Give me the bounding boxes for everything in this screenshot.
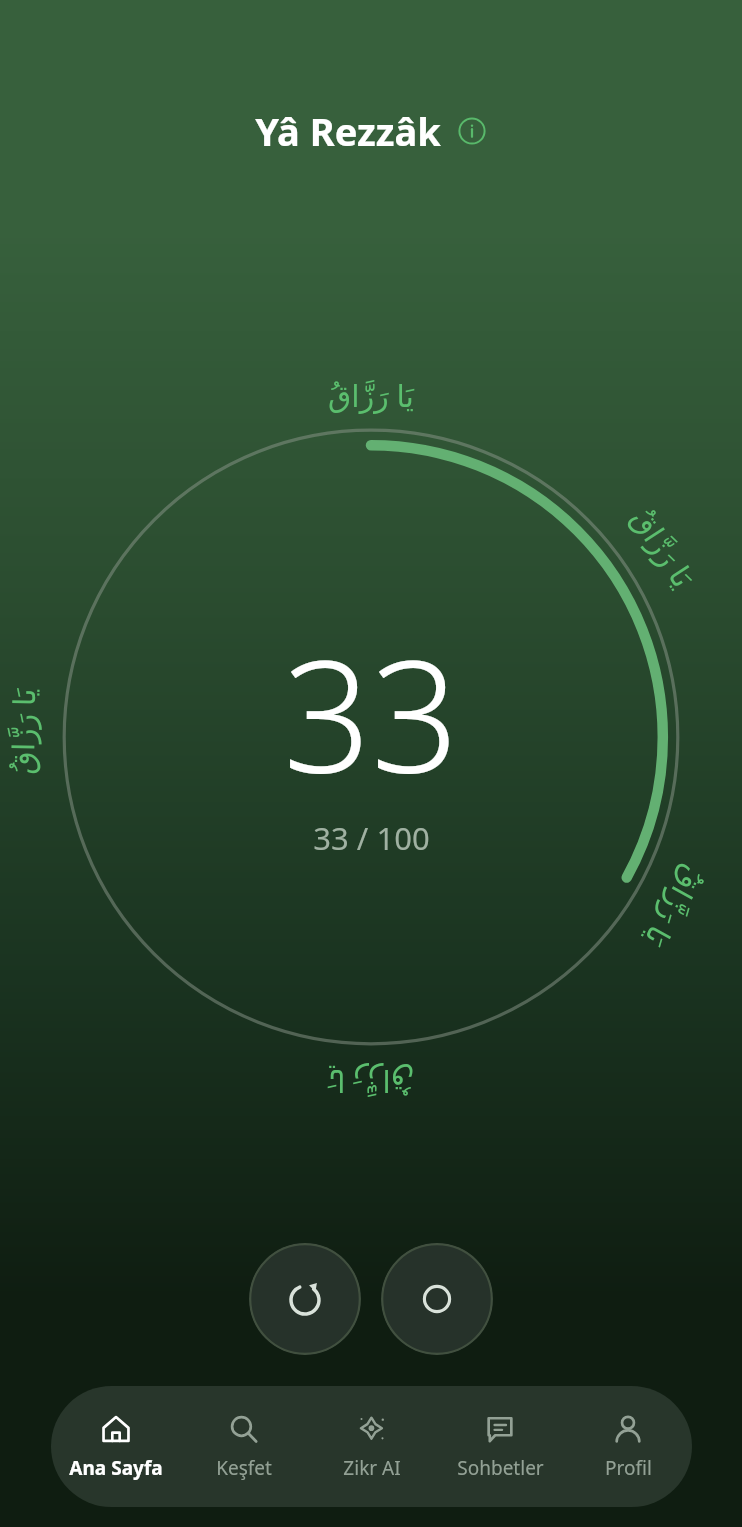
- button[interactable]: Sıfırla: [249, 1243, 361, 1355]
- button[interactable]: Say: [381, 1243, 493, 1355]
- staticText: 33 / 100: [313, 817, 430, 859]
- staticText: يَا رَزَّاقُ: [328, 375, 414, 416]
- staticText: Profil: [605, 1455, 652, 1481]
- staticText: Zikr AI: [343, 1455, 401, 1481]
- staticText: Keşfet: [216, 1455, 272, 1481]
- staticText: يَا رَزَّاقُ: [622, 500, 704, 595]
- staticText: Yâ Rezzâk: [255, 105, 441, 157]
- staticText: 33: [283, 607, 459, 817]
- button[interactable]: Keşfet: [180, 1386, 308, 1507]
- button[interactable]: Zikr AI: [308, 1386, 436, 1507]
- staticText: Sohbetler: [457, 1455, 544, 1481]
- button[interactable]: Bilgi: [457, 116, 487, 146]
- button[interactable]: Sohbetler: [436, 1386, 564, 1507]
- staticText: يَا رَزَّاقُ: [636, 859, 714, 954]
- staticText: يَا رَزَّاقُ: [328, 1061, 414, 1102]
- button[interactable]: 33: [283, 607, 459, 859]
- staticText: يَا رَزَّاقُ: [2, 688, 44, 775]
- button[interactable]: Ana Sayfa: [51, 1386, 180, 1507]
- button[interactable]: Profil: [564, 1386, 692, 1507]
- staticText: Ana Sayfa: [69, 1455, 163, 1481]
- button[interactable]: Yâ Rezzâk: [249, 101, 493, 161]
